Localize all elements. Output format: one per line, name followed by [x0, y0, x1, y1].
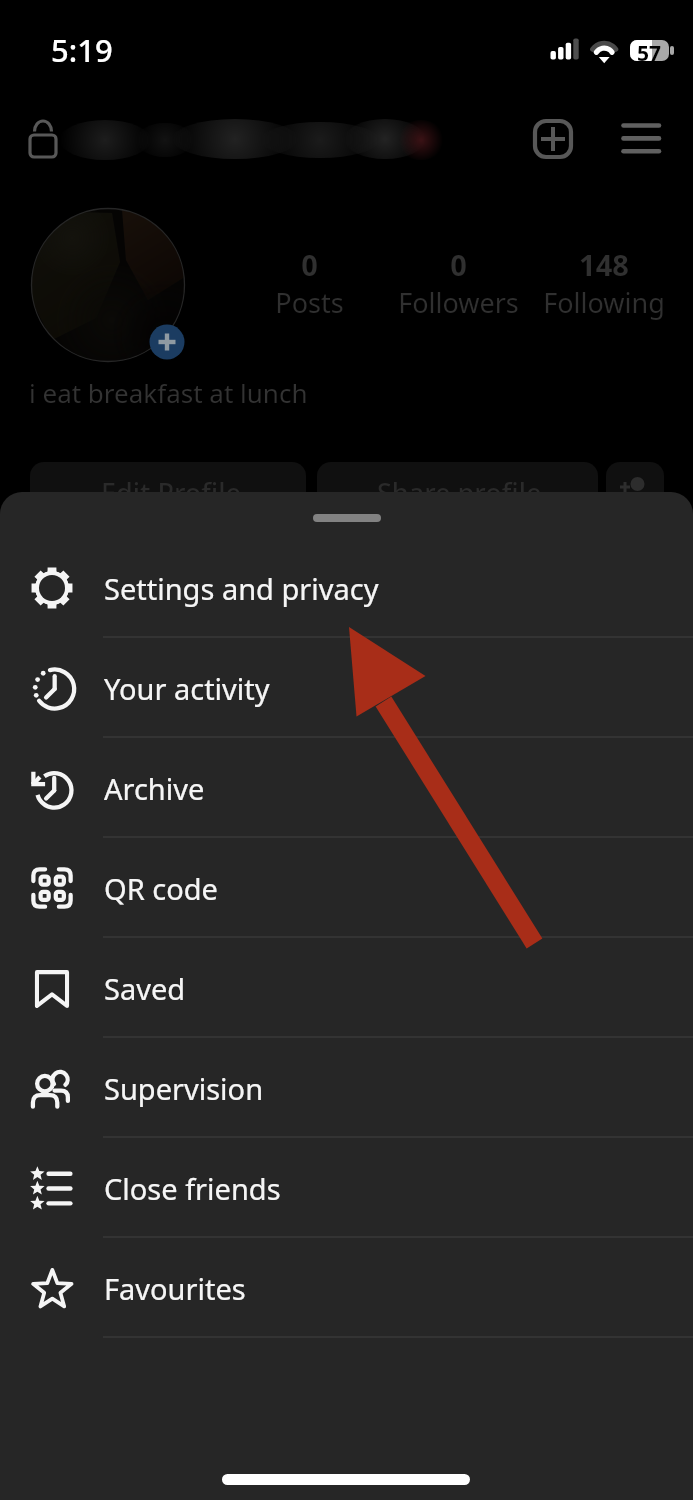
button[interactable]: Profile photo — [30, 207, 187, 364]
button[interactable]: Supervision — [0, 1038, 693, 1138]
button[interactable]: Username — [64, 118, 454, 166]
staticText: 0 — [301, 245, 318, 284]
button[interactable]: Settings and privacy — [0, 538, 693, 638]
staticText: QR code — [104, 869, 218, 908]
button[interactable]: Share profile — [317, 462, 598, 526]
staticText: 148 — [579, 245, 629, 284]
staticText: 57 — [637, 39, 662, 68]
button[interactable]: 148 Following — [546, 245, 662, 315]
staticText: i eat breakfast at lunch — [29, 375, 308, 410]
staticText: Posts — [275, 284, 344, 321]
staticText: Archive — [104, 769, 205, 808]
button[interactable]: Your activity — [0, 638, 693, 738]
button[interactable]: Favourites — [0, 1238, 693, 1338]
button[interactable]: New post — [528, 114, 578, 164]
button[interactable]: 0 Posts — [268, 245, 350, 315]
staticText: Your activity — [104, 669, 270, 708]
staticText: Saved — [104, 969, 186, 1008]
button[interactable]: Edit Profile — [30, 462, 306, 526]
staticText: Settings and privacy — [104, 569, 379, 608]
staticText: Close friends — [104, 1169, 281, 1208]
staticText: Followers — [398, 284, 519, 321]
button[interactable]: Menu — [616, 114, 666, 164]
button[interactable]: Archive — [0, 738, 693, 838]
button[interactable]: Private account — [18, 118, 70, 170]
button[interactable]: QR code — [0, 838, 693, 938]
button[interactable]: Discover people — [606, 462, 664, 526]
staticText: 0 — [450, 245, 467, 284]
staticText: 5:19 — [51, 29, 113, 71]
button[interactable]: Add to story — [148, 323, 187, 362]
staticText: Share profile — [377, 474, 542, 511]
staticText: Edit Profile — [101, 474, 241, 511]
staticText: Favourites — [104, 1269, 246, 1308]
button[interactable]: Close friends — [0, 1138, 693, 1238]
button[interactable]: Saved — [0, 938, 693, 1038]
button[interactable]: 0 Followers — [400, 245, 516, 315]
staticText: Following — [543, 284, 665, 321]
staticText: Supervision — [104, 1069, 264, 1108]
